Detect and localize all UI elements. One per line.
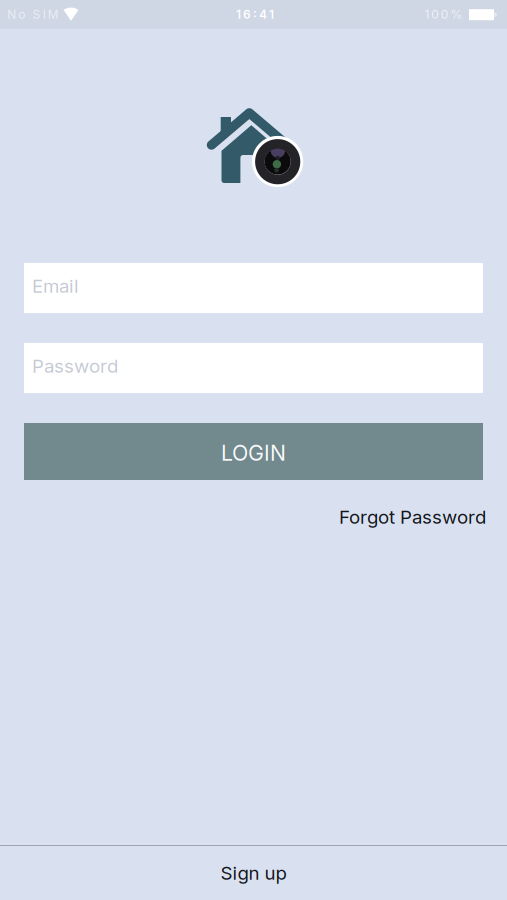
staticText: Password	[32, 355, 118, 377]
staticText: Email	[32, 275, 79, 297]
staticText: Sign up	[220, 862, 286, 884]
staticText: Forgot Password	[339, 506, 486, 528]
staticText: No SIM	[7, 7, 59, 22]
staticText: LOGIN	[221, 440, 286, 466]
button[interactable]: Forgot Password	[339, 506, 486, 528]
button[interactable]: Sign up	[220, 862, 286, 884]
staticText: 100%	[425, 7, 462, 22]
button[interactable]: Email	[24, 263, 483, 313]
staticText: 16:41	[236, 7, 274, 22]
button[interactable]: LOGIN	[24, 423, 483, 480]
button[interactable]: Password	[24, 343, 483, 393]
